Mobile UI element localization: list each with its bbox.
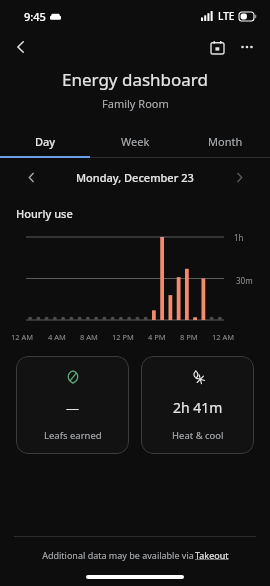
staticText: Takeout xyxy=(195,549,229,561)
button[interactable]: More options xyxy=(232,32,262,62)
staticText: Heat & cool xyxy=(172,429,224,442)
button[interactable]: Calendar xyxy=(202,32,232,62)
staticText: Additional data may be available via xyxy=(41,549,195,561)
button[interactable]: 2h 41m xyxy=(141,356,254,454)
staticText: 4 PM xyxy=(148,332,166,342)
button[interactable]: Back xyxy=(6,32,36,62)
staticText: Leafs earned xyxy=(44,429,102,442)
button[interactable]: Month xyxy=(180,125,270,158)
staticText: 12 PM xyxy=(112,332,134,342)
button[interactable]: — xyxy=(16,356,129,454)
staticText: Energy dashboard xyxy=(62,68,208,91)
staticText: 12 AM xyxy=(11,332,34,342)
button[interactable]: Next day xyxy=(226,164,252,190)
staticText: Hourly use xyxy=(16,206,73,221)
staticText: Month xyxy=(208,134,243,149)
staticText: — xyxy=(66,399,80,417)
staticText: 2h 41m xyxy=(173,398,223,417)
staticText: 30m xyxy=(236,275,253,286)
button[interactable]: Day xyxy=(0,125,90,158)
staticText: 8 PM xyxy=(180,332,198,342)
staticText: 4 AM xyxy=(48,332,66,342)
staticText: 12 AM xyxy=(212,332,235,342)
staticText: 9:45 xyxy=(24,9,46,24)
button[interactable]: Previous day xyxy=(18,164,44,190)
staticText: Week xyxy=(121,134,150,149)
staticText: 1h xyxy=(234,232,244,243)
button[interactable]: Week xyxy=(90,125,180,158)
staticText: Day xyxy=(35,134,56,149)
button[interactable]: Additional data may be available via xyxy=(0,549,270,561)
staticText: LTE xyxy=(218,9,235,23)
staticText: Monday, December 23 xyxy=(76,170,194,185)
staticText: Family Room xyxy=(102,96,169,111)
staticText: 8 AM xyxy=(80,332,98,342)
